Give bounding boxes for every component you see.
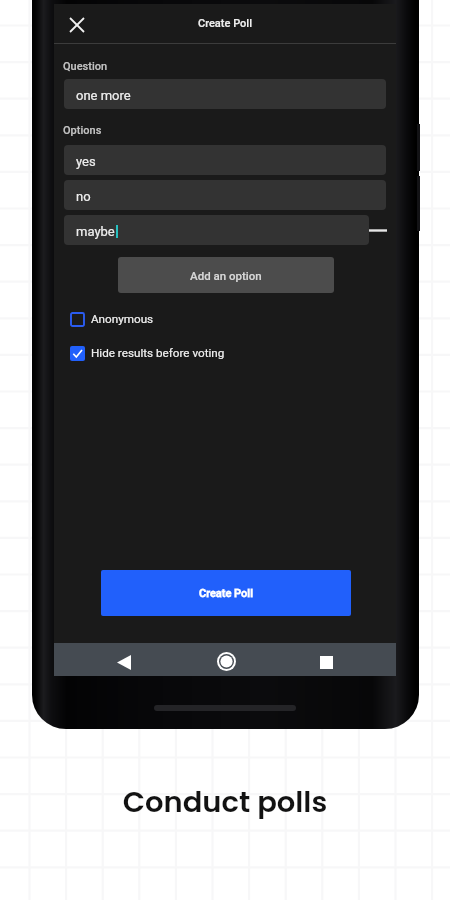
staticText: Conduct polls (0, 782, 450, 823)
button[interactable]: yes (64, 145, 386, 175)
staticText: maybe (76, 224, 115, 239)
staticText: Question (63, 60, 108, 73)
staticText: Create Poll (54, 17, 396, 30)
staticText: no (76, 189, 91, 204)
staticText: Options (63, 124, 102, 137)
button[interactable]: Create Poll (101, 570, 351, 616)
button[interactable]: Close (64, 12, 90, 38)
button[interactable]: one more (64, 79, 386, 109)
button[interactable]: Add an option (118, 257, 334, 293)
button[interactable]: Home (210, 645, 242, 677)
button[interactable]: Anonymous (70, 308, 154, 330)
button[interactable]: Hide results before voting (70, 342, 225, 364)
button[interactable]: Recents (310, 646, 342, 678)
staticText: Hide results before voting (91, 346, 225, 360)
staticText: Create Poll (199, 587, 253, 600)
staticText: yes (76, 154, 96, 169)
staticText: Anonymous (91, 312, 154, 326)
button[interactable]: Remove option (364, 216, 392, 244)
button[interactable]: no (64, 180, 386, 210)
button[interactable]: maybe (64, 215, 369, 245)
staticText: Add an option (190, 269, 262, 282)
staticText: one more (76, 88, 131, 103)
button[interactable]: Back (108, 646, 140, 678)
